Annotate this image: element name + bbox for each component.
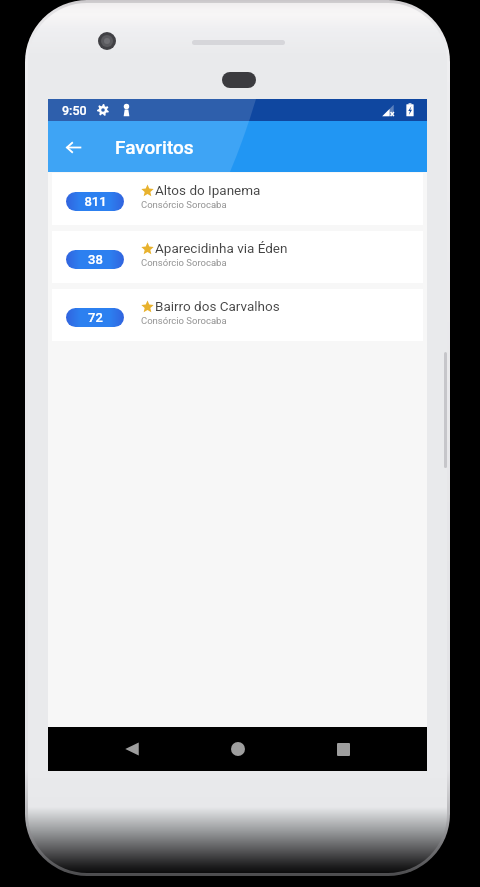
button[interactable]: 72	[52, 289, 423, 341]
staticText: 811	[84, 194, 107, 209]
button[interactable]: Recents	[321, 727, 365, 771]
button[interactable]: 38	[52, 231, 423, 283]
staticText: 72	[88, 310, 103, 325]
staticText: Altos do Ipanema	[155, 182, 261, 198]
button[interactable]: Home	[216, 727, 260, 771]
button[interactable]: Back	[61, 135, 85, 159]
button[interactable]: Back	[110, 727, 154, 771]
staticText: Aparecidinha via Éden	[155, 240, 288, 256]
staticText: 9:50	[62, 103, 87, 118]
staticText: Consórcio Sorocaba	[141, 199, 227, 210]
staticText: Bairro dos Carvalhos	[155, 298, 280, 314]
button[interactable]: 811	[52, 173, 423, 225]
staticText: Consórcio Sorocaba	[141, 257, 227, 268]
staticText: Consórcio Sorocaba	[141, 315, 227, 326]
staticText: Favoritos	[115, 136, 194, 158]
staticText: 38	[88, 252, 103, 267]
button[interactable]: Back	[48, 121, 427, 172]
